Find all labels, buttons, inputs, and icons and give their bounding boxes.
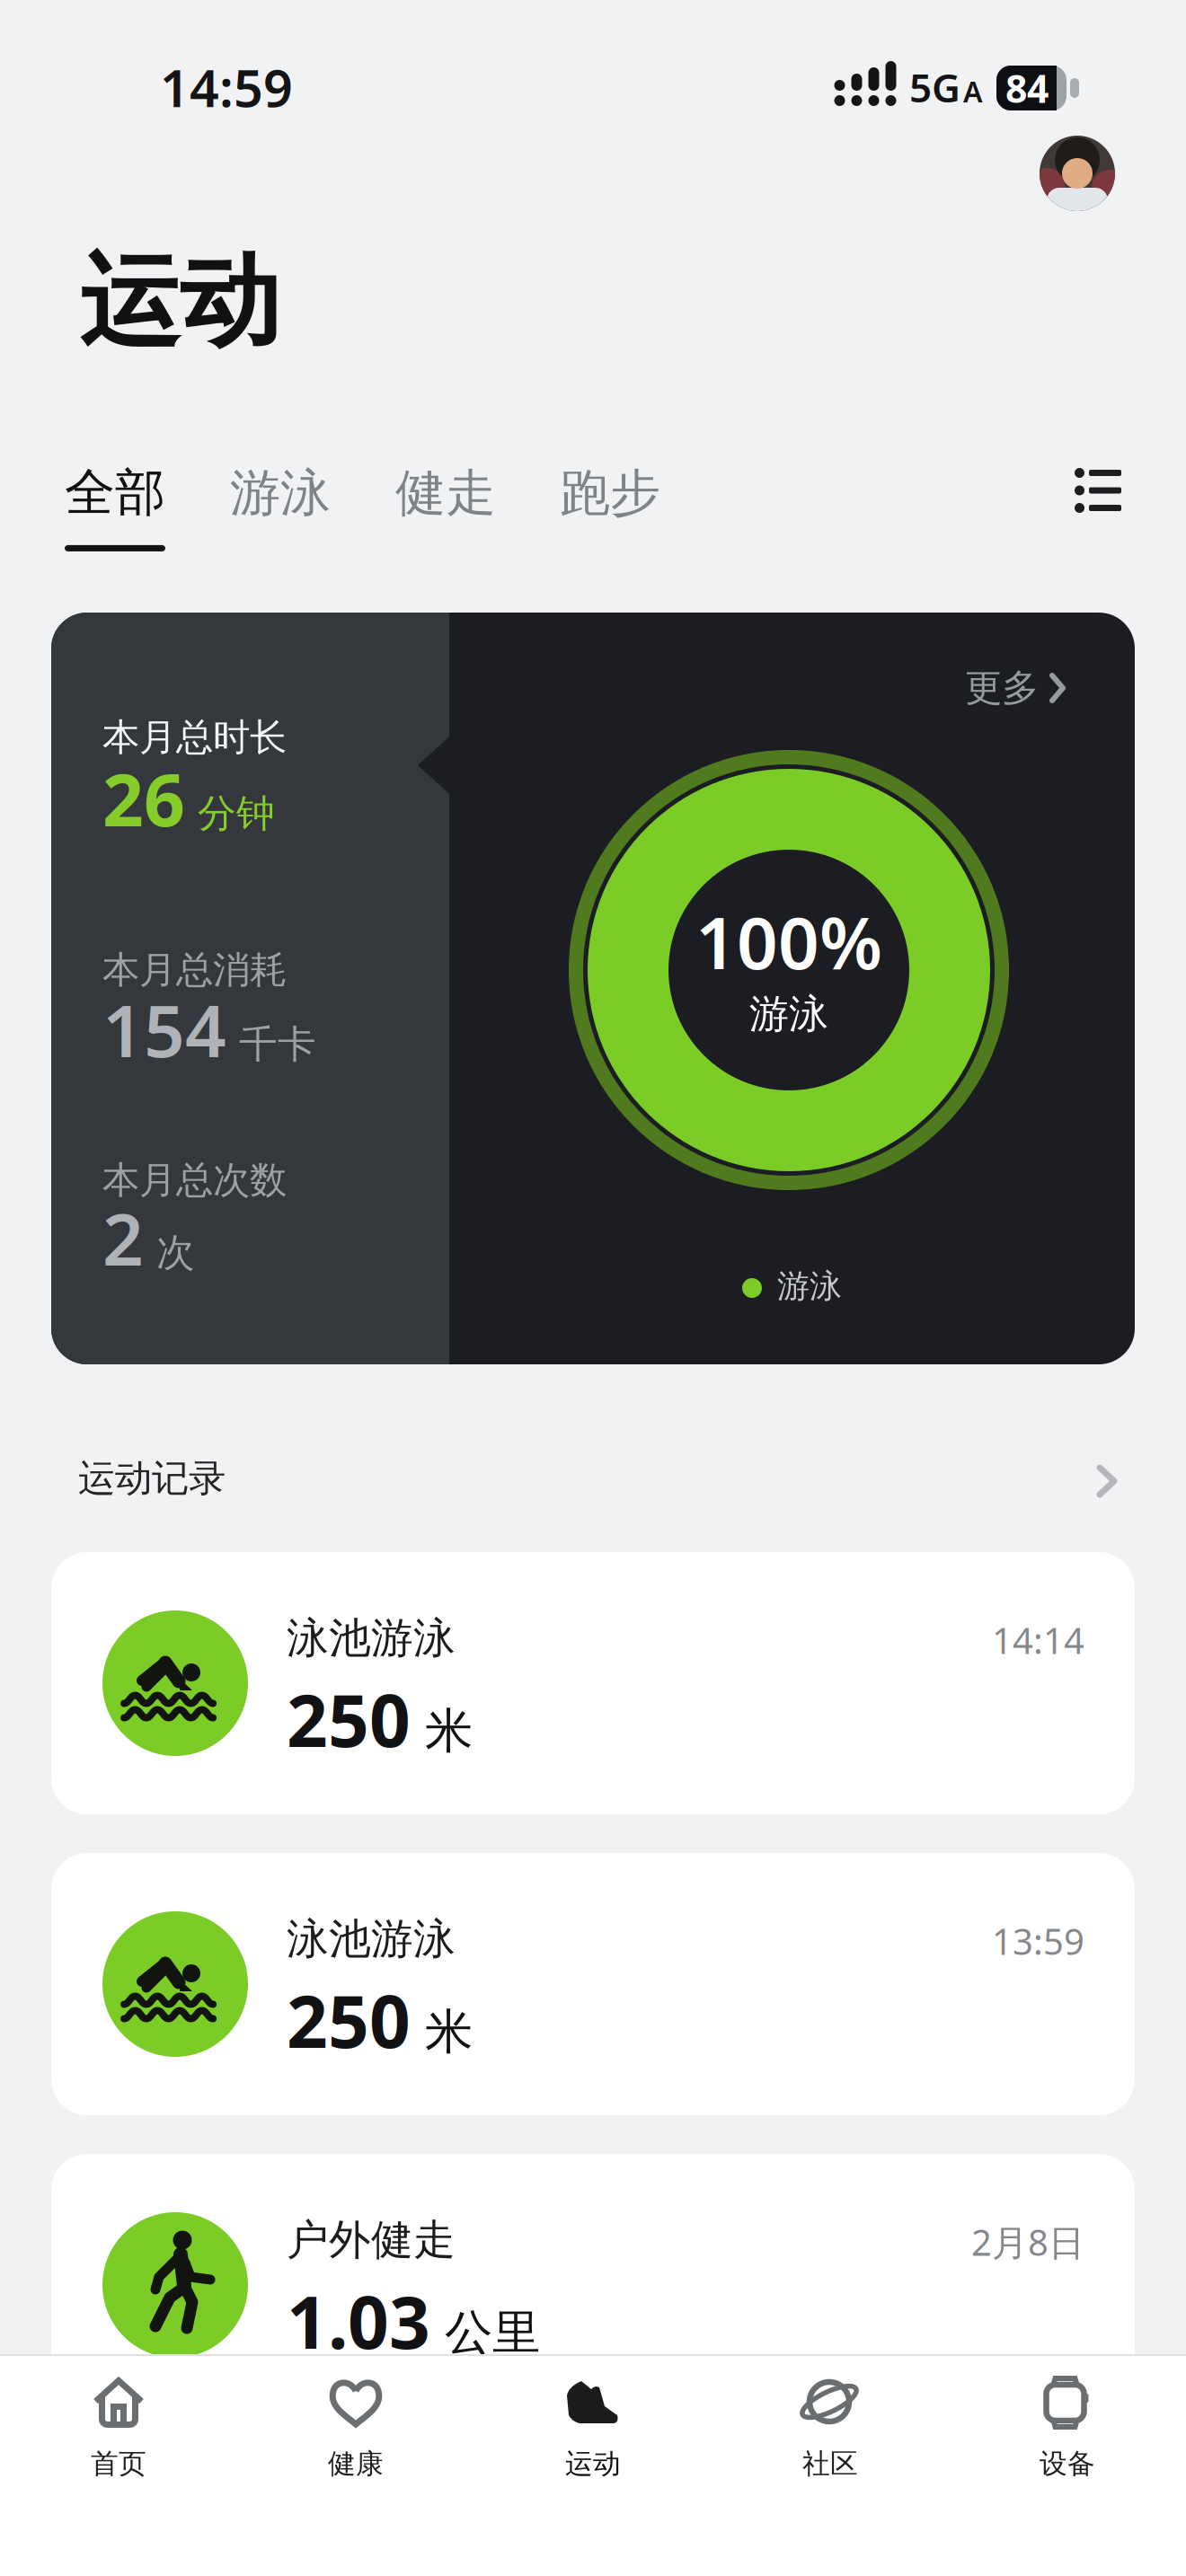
staticText: 5G: [909, 61, 960, 113]
button[interactable]: 社区: [758, 2358, 902, 2519]
button[interactable]: 运动: [521, 2358, 665, 2519]
staticText: 26: [102, 751, 185, 846]
button[interactable]: 泳池游泳: [51, 1853, 1135, 2115]
button[interactable]: 个人资料: [1040, 136, 1115, 211]
staticText: 14:14: [992, 1616, 1084, 1664]
staticText: 250: [287, 1972, 411, 2068]
staticText: 13:59: [992, 1917, 1084, 1965]
button[interactable]: 健康: [284, 2358, 428, 2519]
button[interactable]: 首页: [47, 2358, 190, 2519]
button[interactable]: 游泳: [230, 462, 331, 524]
staticText: 游泳: [749, 990, 828, 1038]
staticText: 1.03: [287, 2273, 430, 2369]
staticText: 次: [156, 1229, 195, 1276]
staticText: 游泳: [777, 1266, 842, 1306]
staticText: 设备: [1040, 2447, 1095, 2481]
staticText: 首页: [91, 2447, 146, 2481]
button[interactable]: 本月总时长: [51, 613, 1135, 1364]
staticText: 千卡: [239, 1021, 316, 1068]
staticText: 米: [425, 2003, 473, 2061]
staticText: 泳池游泳: [287, 1613, 456, 1664]
staticText: 运动: [79, 240, 280, 364]
staticText: 运动: [565, 2447, 621, 2481]
staticText: 健康: [328, 2447, 384, 2481]
button[interactable]: 更多: [965, 665, 1066, 711]
button[interactable]: 运动记录: [0, 1441, 1186, 1516]
staticText: 公里: [445, 2303, 540, 2362]
staticText: 全部: [65, 462, 165, 524]
staticText: A: [963, 72, 983, 110]
staticText: 14:59: [160, 53, 293, 121]
staticText: 2: [102, 1190, 144, 1285]
staticText: 本月总消耗: [102, 947, 287, 993]
staticText: 跑步: [560, 462, 660, 524]
staticText: 健走: [395, 462, 496, 524]
staticText: 户外健走: [287, 2214, 456, 2266]
staticText: 250: [287, 1671, 411, 1767]
button[interactable]: 设备: [996, 2358, 1139, 2519]
staticText: 100%: [695, 894, 882, 989]
button[interactable]: 户外健走: [51, 2154, 1135, 2416]
staticText: 本月总时长: [102, 715, 287, 760]
staticText: 运动记录: [78, 1456, 226, 1501]
button[interactable]: 全部: [65, 462, 165, 551]
staticText: 2月8日: [971, 2218, 1084, 2266]
staticText: 154: [102, 982, 226, 1077]
staticText: 84: [1005, 63, 1049, 114]
staticText: 社区: [802, 2447, 858, 2481]
staticText: 泳池游泳: [287, 1913, 456, 1965]
staticText: 游泳: [230, 462, 331, 524]
button[interactable]: 列表: [1073, 468, 1121, 513]
staticText: 米: [425, 1702, 473, 1760]
button[interactable]: 健走: [395, 462, 496, 524]
staticText: 本月总次数: [102, 1157, 287, 1203]
staticText: 更多: [965, 665, 1039, 711]
button[interactable]: 泳池游泳: [51, 1552, 1135, 1814]
staticText: 分钟: [198, 790, 275, 837]
button[interactable]: 跑步: [560, 462, 660, 524]
